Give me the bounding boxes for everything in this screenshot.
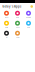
button[interactable]: Gamma [23, 10, 34, 19]
staticText: Delta [5, 26, 8, 28]
button[interactable]: Beta [12, 10, 23, 19]
staticText: Epsil [16, 26, 19, 28]
button[interactable]: Delta [1, 20, 12, 29]
button[interactable]: Alpha [1, 10, 12, 19]
staticText: Gamma [26, 16, 31, 18]
staticText: Eta [5, 36, 7, 38]
staticText: Today's Apps [2, 5, 21, 8]
staticText: Beta [16, 16, 19, 18]
staticText: Theta [15, 36, 19, 38]
button[interactable]: Zeta [23, 20, 34, 29]
staticText: Alpha [4, 16, 8, 18]
button[interactable]: Profile [30, 5, 33, 8]
staticText: Zeta [27, 26, 30, 28]
button[interactable]: Eta [1, 30, 12, 39]
button[interactable]: Epsil [12, 20, 23, 29]
button[interactable]: Theta [12, 30, 23, 39]
